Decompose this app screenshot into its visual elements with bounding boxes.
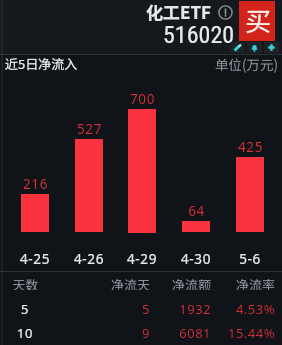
staticText: 5	[21, 300, 29, 315]
button[interactable]: Information	[217, 4, 233, 20]
staticText: 4-25	[20, 250, 50, 268]
staticText: 近5日净流入	[5, 54, 78, 73]
staticText: 216	[23, 175, 48, 193]
staticText: 4-30	[181, 250, 211, 268]
button[interactable]: Add to watchlist	[264, 42, 279, 53]
staticText: 5	[142, 300, 150, 315]
staticText: 4-29	[127, 250, 157, 268]
staticText: 700	[130, 90, 155, 108]
staticText: 10	[17, 324, 33, 339]
staticText: 买	[245, 1, 272, 39]
staticText: 净流额	[171, 275, 211, 290]
staticText: 527	[77, 120, 102, 138]
staticText: 15.44%	[227, 324, 275, 339]
staticText: 4-26	[74, 250, 104, 268]
staticText: 9	[142, 324, 150, 339]
staticText: 1932	[179, 300, 211, 315]
button[interactable]: Notifications	[247, 42, 262, 53]
button[interactable]: Edit	[230, 42, 245, 53]
staticText: 6081	[179, 324, 211, 339]
staticText: 516020	[163, 21, 235, 49]
staticText: 64	[188, 202, 205, 220]
staticText: 5-6	[239, 250, 261, 268]
staticText: 4.53%	[235, 300, 275, 315]
staticText: 天数	[12, 275, 39, 290]
staticText: 净流天	[110, 275, 150, 290]
button[interactable]: 买	[239, 1, 275, 41]
staticText: 425	[238, 138, 263, 156]
staticText: 单位(万元)	[215, 54, 279, 74]
staticText: 净流率	[235, 275, 275, 290]
staticText: 化工ETF	[146, 0, 212, 24]
